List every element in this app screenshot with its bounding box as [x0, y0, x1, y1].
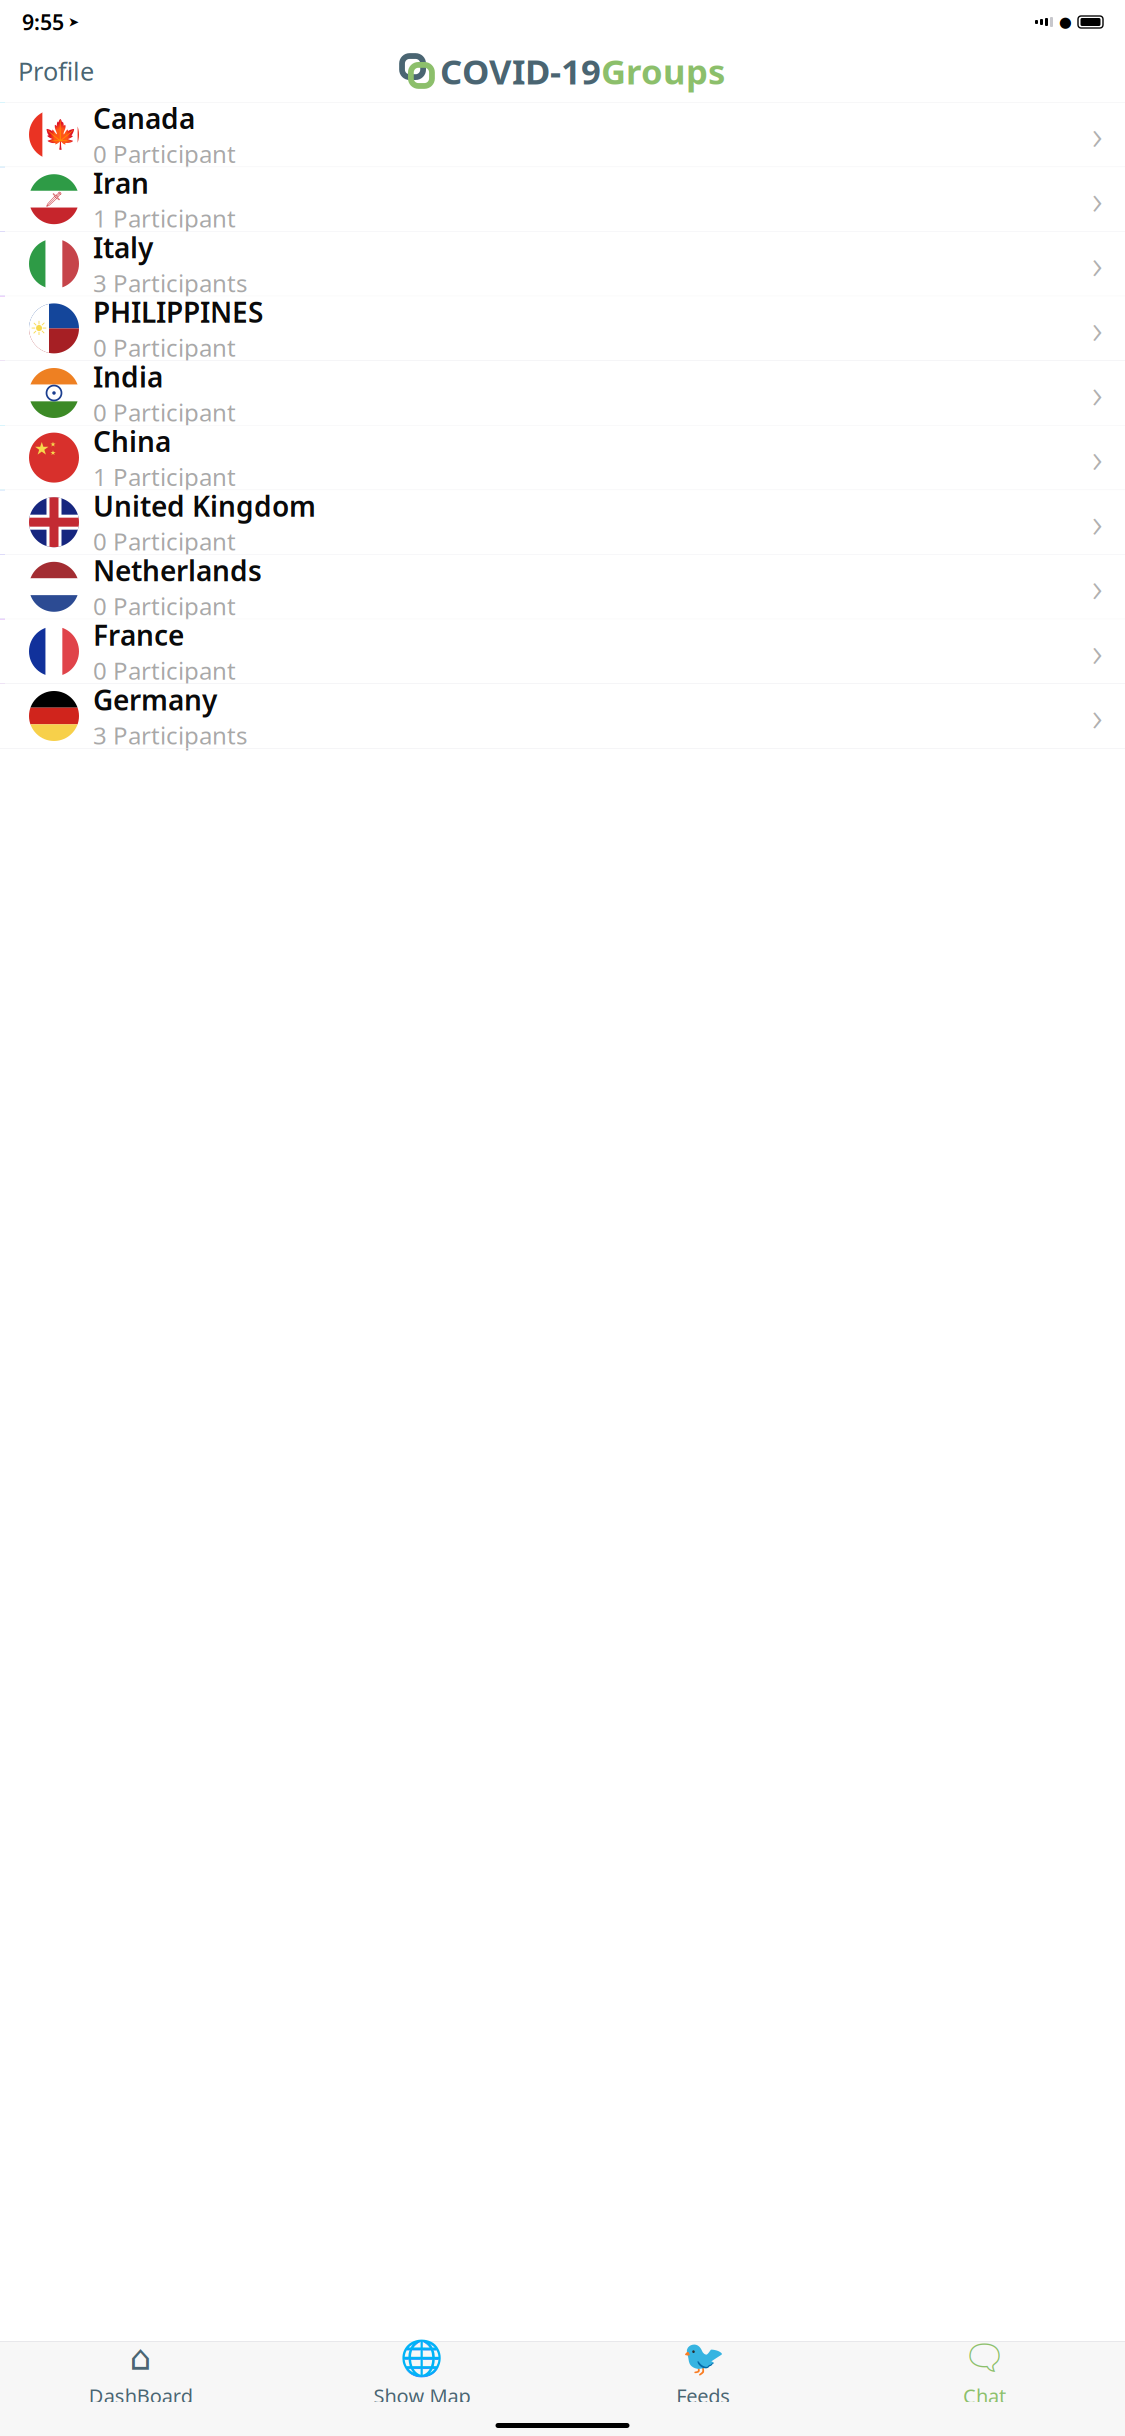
- staticText: France: [93, 616, 184, 654]
- staticText: PHILIPPINES: [93, 293, 263, 331]
- staticText: 🍁: [43, 119, 78, 151]
- staticText: ›: [1092, 496, 1103, 549]
- staticText: Netherlands: [93, 552, 262, 589]
- staticText: COVID-19: [440, 48, 601, 94]
- staticText: United Kingdom: [93, 487, 316, 524]
- button[interactable]: France: [0, 619, 1125, 683]
- staticText: 🐦: [682, 2338, 725, 2377]
- button[interactable]: Profile: [0, 44, 112, 98]
- staticText: Groups: [601, 48, 725, 94]
- button[interactable]: 🗨: [844, 2329, 1125, 2415]
- staticText: 1 Participant: [93, 202, 236, 234]
- button[interactable]: 🍁: [0, 103, 1125, 167]
- button[interactable]: Germany: [0, 684, 1125, 748]
- staticText: ⌂: [130, 2338, 152, 2377]
- staticText: Iran: [93, 164, 149, 201]
- button[interactable]: ★: [0, 426, 1125, 490]
- staticText: 0 Participant: [93, 332, 236, 363]
- staticText: India: [93, 358, 163, 395]
- staticText: ›: [1092, 431, 1103, 484]
- staticText: ☀: [30, 317, 48, 340]
- staticText: 🌐: [400, 2338, 443, 2377]
- staticText: ›: [1092, 302, 1103, 355]
- button[interactable]: United Kingdom: [0, 490, 1125, 554]
- staticText: 0 Participant: [93, 525, 236, 557]
- staticText: 9:55: [22, 8, 64, 36]
- staticText: ★: [50, 449, 56, 456]
- staticText: ➤: [68, 14, 79, 29]
- staticText: ›: [1092, 560, 1103, 613]
- staticText: ★: [50, 440, 56, 448]
- staticText: 🗨: [962, 2338, 1006, 2377]
- button[interactable]: India: [0, 361, 1125, 425]
- staticText: 0 Participant: [93, 138, 236, 170]
- staticText: Italy: [93, 229, 153, 266]
- staticText: China: [93, 423, 171, 460]
- staticText: ›: [1092, 366, 1103, 419]
- staticText: ›: [1092, 108, 1103, 161]
- staticText: ›: [1092, 625, 1103, 678]
- staticText: ›: [1092, 237, 1103, 290]
- staticText: Profile: [18, 54, 94, 88]
- staticText: ›: [1092, 689, 1103, 742]
- button[interactable]: ⌂: [0, 2329, 281, 2415]
- staticText: 0 Participant: [93, 396, 236, 428]
- staticText: 1 Participant: [93, 461, 236, 493]
- staticText: 3 Participants: [93, 719, 247, 751]
- staticText: DashBoard: [89, 2382, 193, 2409]
- staticText: Canada: [93, 100, 195, 137]
- staticText: ★: [34, 439, 50, 458]
- staticText: Feeds: [676, 2382, 730, 2409]
- staticText: Show Map: [373, 2382, 470, 2409]
- button[interactable]: Netherlands: [0, 555, 1125, 619]
- button[interactable]: Italy: [0, 232, 1125, 296]
- button[interactable]: 🌐: [281, 2329, 562, 2415]
- staticText: 0 Participant: [93, 655, 236, 686]
- staticText: Chat: [963, 2382, 1006, 2409]
- staticText: 🗡: [44, 191, 63, 208]
- staticText: 3 Participants: [93, 267, 247, 299]
- staticText: ●: [1059, 14, 1072, 30]
- staticText: ›: [1092, 173, 1103, 226]
- staticText: 0 Participant: [93, 590, 236, 622]
- button[interactable]: ☀: [0, 296, 1125, 360]
- button[interactable]: 🐦: [562, 2329, 844, 2415]
- staticText: Germany: [93, 681, 217, 718]
- button[interactable]: 🗡: [0, 167, 1125, 231]
